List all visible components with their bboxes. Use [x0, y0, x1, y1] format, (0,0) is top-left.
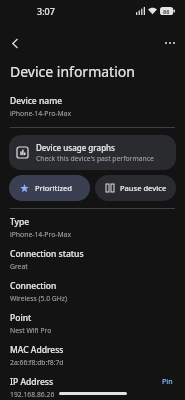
staticText: Wireless (5.0 GHz): [10, 294, 68, 303]
staticText: Connection status: [10, 248, 84, 260]
staticText: Prioritized: [35, 183, 72, 193]
staticText: Type: [10, 216, 30, 228]
staticText: iPhone-14-Pro-Max: [10, 230, 72, 239]
staticText: 2a:66:f8:db:f8:7d: [10, 358, 64, 367]
staticText: MAC Address: [10, 344, 64, 356]
staticText: Device information: [10, 62, 135, 81]
staticText: 86: [163, 8, 170, 15]
staticText: Device usage graphs: [36, 142, 115, 153]
staticText: 192.168.86.26: [10, 390, 55, 399]
button[interactable]: Prioritized: [9, 175, 90, 201]
button[interactable]: Pause device: [95, 175, 176, 201]
staticText: Pause device: [120, 183, 167, 193]
staticText: Check this device's past performance: [36, 154, 154, 163]
staticText: Device name: [10, 95, 63, 107]
button[interactable]: Device usage graphs: [9, 135, 176, 170]
staticText: IP Address: [10, 376, 54, 388]
button[interactable]: Pin: [160, 376, 175, 388]
button[interactable]: More options: [159, 32, 181, 54]
staticText: 3:07: [37, 5, 55, 17]
button[interactable]: Back: [4, 32, 26, 54]
staticText: Nest Wifi Pro: [10, 326, 52, 335]
staticText: Connection: [10, 280, 57, 292]
staticText: iPhone-14-Pro-Max: [10, 109, 72, 118]
staticText: Great: [10, 262, 28, 271]
staticText: Point: [10, 312, 32, 324]
staticText: Pin: [162, 377, 173, 387]
